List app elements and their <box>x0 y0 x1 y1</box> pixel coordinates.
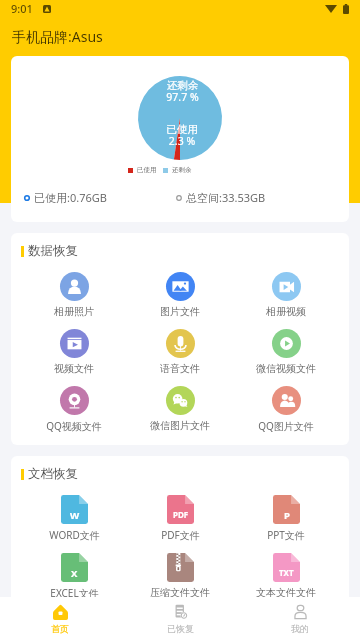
button[interactable]: 相册视频 <box>233 272 339 318</box>
staticText: P <box>284 509 290 522</box>
staticText: 已使用 2.3 % <box>166 123 198 148</box>
staticText: 相册照片 <box>54 305 94 318</box>
staticText: TXT <box>279 567 294 578</box>
staticText: 已使用:0.76GB <box>34 190 107 205</box>
staticText: 我的 <box>291 623 309 634</box>
staticText: 视频文件 <box>54 362 94 375</box>
staticText: WORD文件 <box>49 528 100 542</box>
button[interactable]: 图片文件 <box>127 272 233 318</box>
staticText: W <box>70 509 80 522</box>
button[interactable]: 压缩文件文件 <box>127 553 233 599</box>
staticText: 已恢复 <box>167 623 194 634</box>
staticText: 总空间:33.53GB <box>186 190 266 205</box>
staticText: X <box>71 567 78 580</box>
staticText: PPT文件 <box>267 528 305 542</box>
button[interactable]: PDF <box>127 495 233 542</box>
staticText: 微信视频文件 <box>256 362 316 375</box>
button[interactable]: 已恢复 <box>120 597 240 640</box>
staticText: 文档恢复 <box>28 466 78 482</box>
button[interactable]: TXT <box>233 553 339 599</box>
button[interactable]: 微信图片文件 <box>127 386 233 432</box>
staticText: 已使用 <box>137 166 157 174</box>
staticText: 微信图片文件 <box>150 419 210 432</box>
staticText: 压缩文件文件 <box>150 586 210 599</box>
button[interactable]: 我的 <box>240 597 360 640</box>
staticText: 还剩余 <box>172 166 192 174</box>
button[interactable]: QQ图片文件 <box>233 386 339 433</box>
button[interactable]: QQ视频文件 <box>21 386 127 433</box>
staticText: 首页 <box>51 623 69 634</box>
staticText: 语音文件 <box>160 362 200 375</box>
staticText: 图片文件 <box>160 305 200 318</box>
staticText: 文本文件文件 <box>256 586 316 599</box>
staticText: 还剩余 97.7 % <box>166 79 199 104</box>
staticText: 手机品牌:Asus <box>12 27 103 46</box>
button[interactable]: P <box>233 495 339 542</box>
button[interactable]: 微信视频文件 <box>233 329 339 375</box>
staticText: QQ图片文件 <box>258 419 314 433</box>
staticText: 数据恢复 <box>28 243 78 259</box>
button[interactable]: 首页 <box>0 597 120 640</box>
button[interactable]: 视频文件 <box>21 329 127 375</box>
button[interactable]: X <box>21 553 127 600</box>
button[interactable]: 语音文件 <box>127 329 233 375</box>
staticText: 相册视频 <box>266 305 306 318</box>
staticText: PDF文件 <box>161 528 200 542</box>
staticText: PDF <box>173 509 189 520</box>
staticText: QQ视频文件 <box>46 419 102 433</box>
button[interactable]: 相册照片 <box>21 272 127 318</box>
staticText: 9:01 <box>11 1 33 16</box>
staticText: EXCEL文件 <box>50 586 99 600</box>
button[interactable]: W <box>21 495 127 542</box>
